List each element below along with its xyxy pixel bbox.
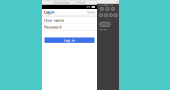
button[interactable]: Password — [42, 24, 97, 30]
button[interactable]: Control — [106, 7, 109, 11]
staticText: Accessibility Inspector — [98, 4, 113, 6]
staticText: Save — [87, 9, 95, 15]
button[interactable]: Control — [100, 7, 104, 11]
staticText: Login — [44, 9, 55, 15]
button[interactable]: Control — [104, 13, 108, 17]
button[interactable]: Control — [111, 7, 115, 11]
staticText: User name — [44, 17, 64, 23]
button[interactable] — [100, 22, 110, 27]
button[interactable]: Control — [109, 13, 113, 17]
button[interactable]: User name — [42, 17, 97, 23]
staticText: Tap to activate — [98, 29, 107, 31]
staticText: Password — [44, 24, 61, 29]
button[interactable]: Log in — [42, 37, 97, 43]
staticText: iOS Simulator – iPhone — [53, 1, 86, 4]
staticText: Log in — [63, 37, 75, 43]
button[interactable]: Save — [87, 9, 95, 15]
button[interactable]: Control — [99, 13, 103, 17]
button[interactable]: Control — [114, 13, 117, 17]
